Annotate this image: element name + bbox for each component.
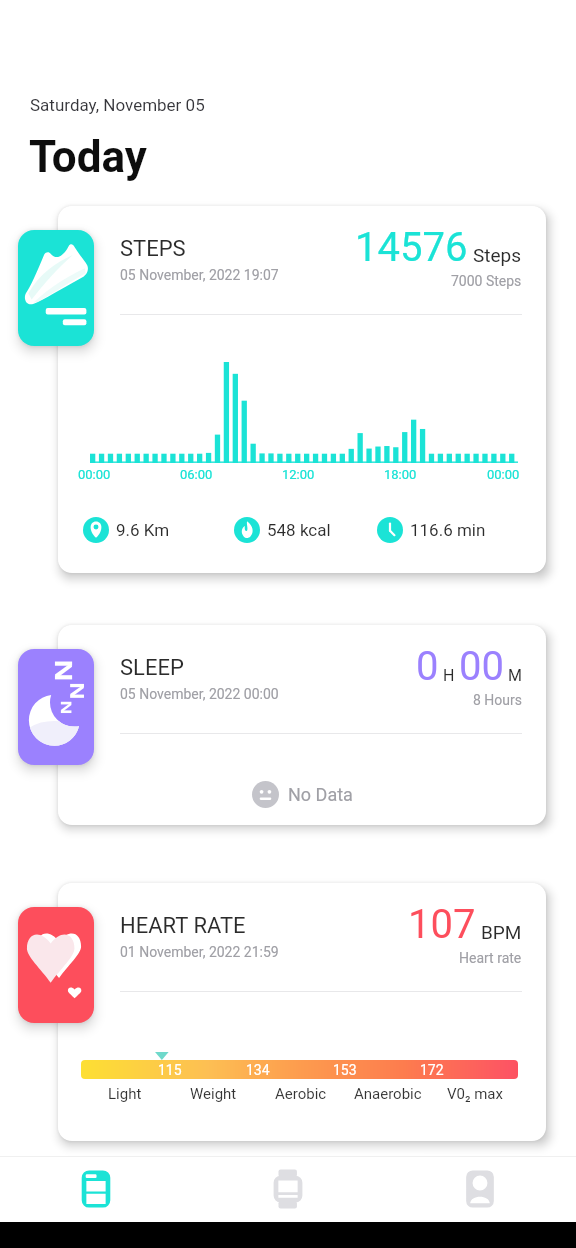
- staticText: 01 November, 2022 21:59: [120, 944, 279, 960]
- staticText: 14576: [355, 224, 468, 271]
- staticText: 9.6 Km: [116, 520, 170, 540]
- staticText: 115: [158, 1062, 182, 1078]
- staticText: 00: [459, 643, 504, 690]
- staticText: 06:00: [180, 467, 213, 482]
- staticText: No Data: [288, 784, 353, 805]
- staticText: SLEEP: [120, 655, 184, 681]
- button[interactable]: Profile: [384, 1156, 576, 1222]
- staticText: Heart rate: [459, 950, 522, 966]
- staticText: BPM: [481, 921, 522, 943]
- staticText: 05 November, 2022 19:07: [120, 267, 279, 283]
- button[interactable]: SLEEP: [58, 625, 546, 825]
- staticText: 107: [408, 901, 476, 948]
- staticText: Steps: [473, 244, 522, 266]
- staticText: 8 Hours: [473, 692, 522, 708]
- staticText: H: [443, 666, 455, 685]
- staticText: 7000 Steps: [451, 273, 522, 289]
- staticText: 116.6 min: [410, 520, 486, 540]
- staticText: 00:00: [78, 467, 111, 482]
- staticText: 18:00: [384, 467, 417, 482]
- staticText: 153: [333, 1062, 357, 1078]
- staticText: Weight: [190, 1085, 237, 1103]
- staticText: Today: [29, 131, 147, 183]
- staticText: 134: [246, 1062, 270, 1078]
- staticText: HEART RATE: [120, 913, 246, 939]
- staticText: Anaerobic: [354, 1085, 422, 1103]
- staticText: Saturday, November 05: [30, 95, 205, 115]
- staticText: STEPS: [120, 236, 186, 262]
- button[interactable]: HEART RATE: [58, 883, 546, 1141]
- staticText: 00:00: [487, 467, 520, 482]
- button[interactable]: STEPS: [58, 206, 546, 573]
- staticText: V0₂ max: [447, 1085, 503, 1103]
- staticText: 172: [420, 1062, 444, 1078]
- staticText: Aerobic: [275, 1085, 327, 1103]
- button[interactable]: Devices: [192, 1156, 384, 1222]
- staticText: Light: [108, 1085, 142, 1103]
- button[interactable]: Today: [0, 1156, 192, 1222]
- staticText: M: [508, 666, 522, 685]
- staticText: 0: [416, 643, 439, 690]
- staticText: 12:00: [282, 467, 315, 482]
- staticText: 548 kcal: [267, 520, 331, 540]
- staticText: 05 November, 2022 00:00: [120, 686, 279, 702]
